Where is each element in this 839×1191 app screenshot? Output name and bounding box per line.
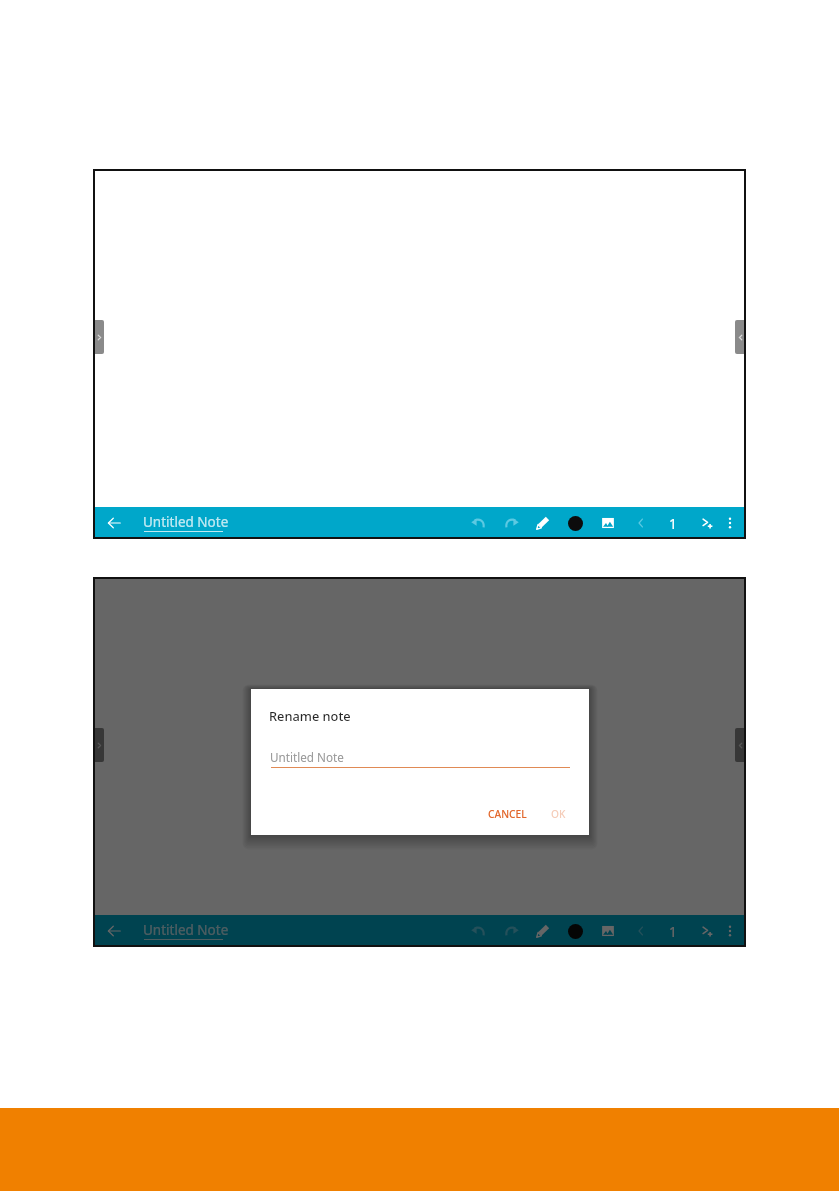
button[interactable]: OK [543, 800, 574, 828]
button[interactable]: Untitled Note [143, 513, 229, 531]
button[interactable]: Open left panel [94, 320, 104, 354]
button[interactable]: Open right panel [735, 320, 745, 354]
button[interactable]: Redo [500, 919, 524, 943]
button[interactable]: Pen [531, 919, 555, 943]
button[interactable]: Open right panel [735, 728, 745, 762]
button[interactable]: Open left panel [94, 728, 104, 762]
button[interactable]: Pen [531, 511, 555, 535]
button[interactable]: Insert image [596, 919, 620, 943]
button[interactable]: Undo [466, 511, 490, 535]
button[interactable]: More options [719, 512, 741, 534]
button[interactable]: Ink colour [563, 511, 587, 535]
staticText: Untitled Note [270, 749, 344, 765]
staticText: 1 [669, 922, 677, 941]
button[interactable]: Back [101, 510, 127, 536]
staticText: OK [551, 807, 566, 821]
staticText: Rename note [269, 707, 351, 724]
staticText: 1 [669, 514, 677, 533]
button[interactable]: CANCEL [480, 800, 535, 828]
staticText: Untitled Note [143, 513, 229, 531]
button[interactable]: Add page [695, 919, 719, 943]
staticText: Untitled Note [143, 921, 229, 939]
staticText: CANCEL [488, 807, 527, 821]
button[interactable]: Undo [466, 919, 490, 943]
button[interactable]: Back [101, 918, 127, 944]
button[interactable]: Add page [695, 511, 719, 535]
button[interactable]: Previous page [630, 920, 652, 942]
button[interactable]: Redo [500, 511, 524, 535]
button[interactable]: Ink colour [563, 919, 587, 943]
button[interactable]: Untitled Note [143, 921, 229, 939]
button[interactable]: Previous page [630, 512, 652, 534]
button[interactable]: Insert image [596, 511, 620, 535]
button[interactable]: More options [719, 920, 741, 942]
